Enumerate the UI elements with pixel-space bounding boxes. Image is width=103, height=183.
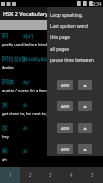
staticText: Last spoken word bbox=[50, 23, 88, 29]
staticText: 挨 bbox=[2, 101, 8, 109]
staticText: 4 bbox=[70, 172, 73, 178]
staticText: hey bbox=[2, 134, 9, 140]
staticText: ah bbox=[2, 157, 7, 163]
button[interactable]: 哎 bbox=[0, 122, 103, 145]
staticText: get close to; be next to; by bbox=[2, 111, 53, 117]
button[interactable]: 阿 bbox=[0, 30, 103, 53]
staticText: 12:34 bbox=[90, 1, 102, 7]
staticText: 2 bbox=[29, 172, 32, 178]
button[interactable]: Expand bbox=[78, 101, 92, 111]
staticText: āi bbox=[23, 148, 28, 155]
staticText: ADD bbox=[61, 83, 70, 88]
staticText: Arabic bbox=[2, 65, 15, 71]
button[interactable]: 4 bbox=[61, 167, 82, 183]
staticText: pause time between words bbox=[50, 57, 103, 63]
staticText: 阿姨 bbox=[2, 78, 14, 86]
button[interactable]: ADD bbox=[57, 123, 73, 133]
staticText: ADD bbox=[61, 104, 70, 109]
button[interactable]: pause time between words bbox=[47, 54, 103, 65]
staticText: 唉 bbox=[2, 147, 8, 155]
staticText: 1 bbox=[9, 172, 12, 178]
staticText: 哎 bbox=[2, 124, 8, 132]
staticText: āi bbox=[23, 125, 28, 132]
button[interactable]: 阿拉伯语 bbox=[0, 53, 103, 76]
staticText: ADD bbox=[61, 126, 70, 131]
staticText: 阿拉伯语 bbox=[2, 55, 26, 63]
button[interactable]: all pages bbox=[47, 43, 103, 54]
staticText: ADD bbox=[61, 147, 70, 152]
button[interactable]: Last spoken word bbox=[47, 20, 103, 31]
button[interactable]: ADD bbox=[57, 144, 73, 154]
staticText: this page bbox=[50, 34, 70, 40]
staticText: ā(a¹) bbox=[23, 33, 34, 40]
staticText: 5 bbox=[91, 172, 94, 178]
staticText: prefix used before kinship term bbox=[2, 42, 63, 48]
staticText: ābùdūyǎjiā bbox=[23, 56, 49, 63]
staticText: āi bbox=[23, 102, 28, 109]
button[interactable]: 1 bbox=[0, 167, 20, 183]
button[interactable]: this page bbox=[47, 31, 103, 42]
button[interactable]: 2 bbox=[20, 167, 40, 183]
staticText: Loop speaking. bbox=[50, 12, 83, 18]
staticText: HSK 2 Vocabulary bbox=[3, 10, 48, 17]
button[interactable]: Expand bbox=[78, 123, 92, 133]
button[interactable]: 挨 bbox=[0, 99, 103, 122]
staticText: 阿 bbox=[2, 32, 8, 40]
staticText: āyí bbox=[23, 79, 30, 86]
button[interactable]: ADD bbox=[57, 80, 73, 90]
button[interactable]: ADD bbox=[57, 101, 73, 111]
button[interactable]: 5 bbox=[82, 167, 103, 183]
button[interactable]: Expand bbox=[78, 144, 92, 154]
staticText: 3 bbox=[49, 172, 52, 178]
button[interactable]: 阿姨 bbox=[0, 76, 103, 99]
button[interactable]: 3 bbox=[40, 167, 61, 183]
button[interactable]: Loop speaking. bbox=[47, 9, 103, 20]
staticText: auntie / nurse (in a family) bbox=[2, 88, 53, 94]
button[interactable]: 唉 bbox=[0, 145, 103, 167]
button[interactable]: Expand bbox=[78, 80, 92, 90]
staticText: all pages bbox=[50, 46, 70, 52]
